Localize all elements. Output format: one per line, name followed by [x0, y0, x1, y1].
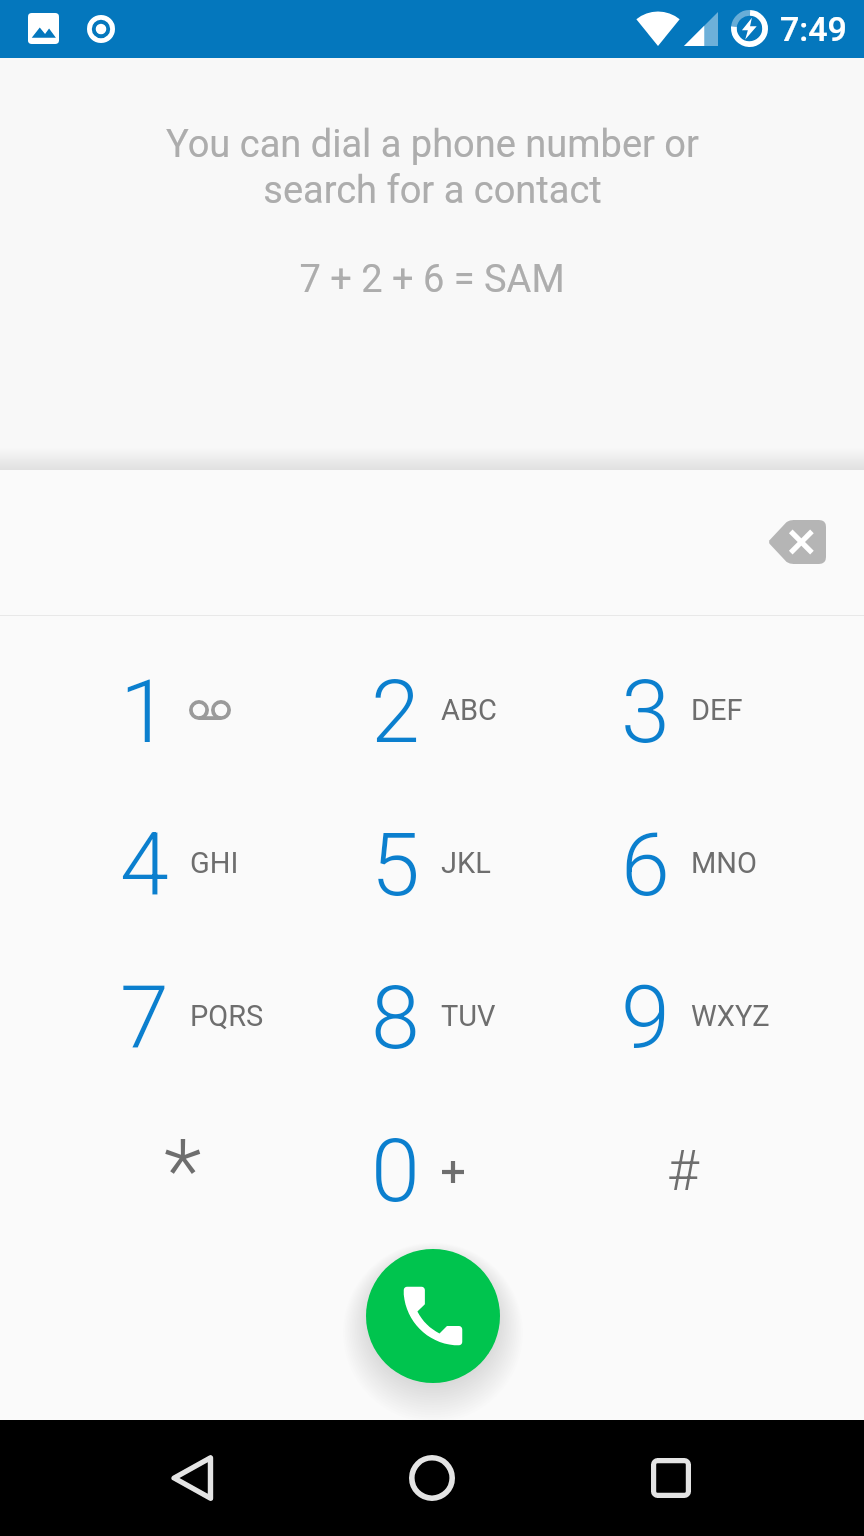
button[interactable]: 2	[308, 635, 558, 788]
staticText: 4	[120, 813, 169, 916]
button[interactable]: 0	[308, 1094, 558, 1247]
staticText: 7 + 2 + 6 = SAM	[299, 257, 565, 302]
button[interactable]: Dialed number	[0, 470, 864, 615]
button[interactable]: Backspace	[754, 499, 840, 585]
button[interactable]: 4	[57, 788, 308, 941]
button[interactable]: 5	[308, 788, 558, 941]
staticText: You can dial a phone number or search fo…	[166, 122, 699, 212]
button[interactable]: Home	[386, 1432, 478, 1524]
staticText: 7	[120, 966, 169, 1069]
button[interactable]: 1	[57, 635, 308, 788]
button[interactable]: #	[558, 1094, 808, 1247]
button[interactable]: *	[57, 1094, 308, 1247]
staticText: MNO	[691, 846, 757, 880]
staticText: 5	[371, 813, 420, 916]
staticText: 7:49	[780, 9, 847, 49]
staticText: DEF	[691, 693, 743, 727]
staticText: PQRS	[190, 999, 264, 1033]
button[interactable]: Back	[147, 1432, 239, 1524]
staticText: 8	[371, 966, 420, 1069]
button[interactable]: 9	[558, 941, 808, 1094]
button[interactable]: 8	[308, 941, 558, 1094]
staticText: WXYZ	[691, 999, 770, 1033]
staticText: GHI	[190, 846, 239, 880]
staticText: 9	[621, 966, 670, 1069]
staticText: #	[667, 1139, 699, 1203]
staticText: JKL	[441, 846, 491, 880]
staticText: *	[164, 1119, 202, 1222]
staticText: 0	[371, 1119, 420, 1222]
button[interactable]: Call	[366, 1249, 500, 1383]
staticText: ABC	[441, 693, 497, 727]
staticText: 6	[621, 813, 670, 916]
staticText: 2	[371, 660, 420, 763]
button[interactable]: 6	[558, 788, 808, 941]
button[interactable]: Recents	[625, 1432, 717, 1524]
button[interactable]: 3	[558, 635, 808, 788]
staticText: 1	[120, 660, 169, 763]
staticText: TUV	[441, 999, 496, 1033]
staticText: 3	[621, 660, 670, 763]
button[interactable]: 7	[57, 941, 308, 1094]
